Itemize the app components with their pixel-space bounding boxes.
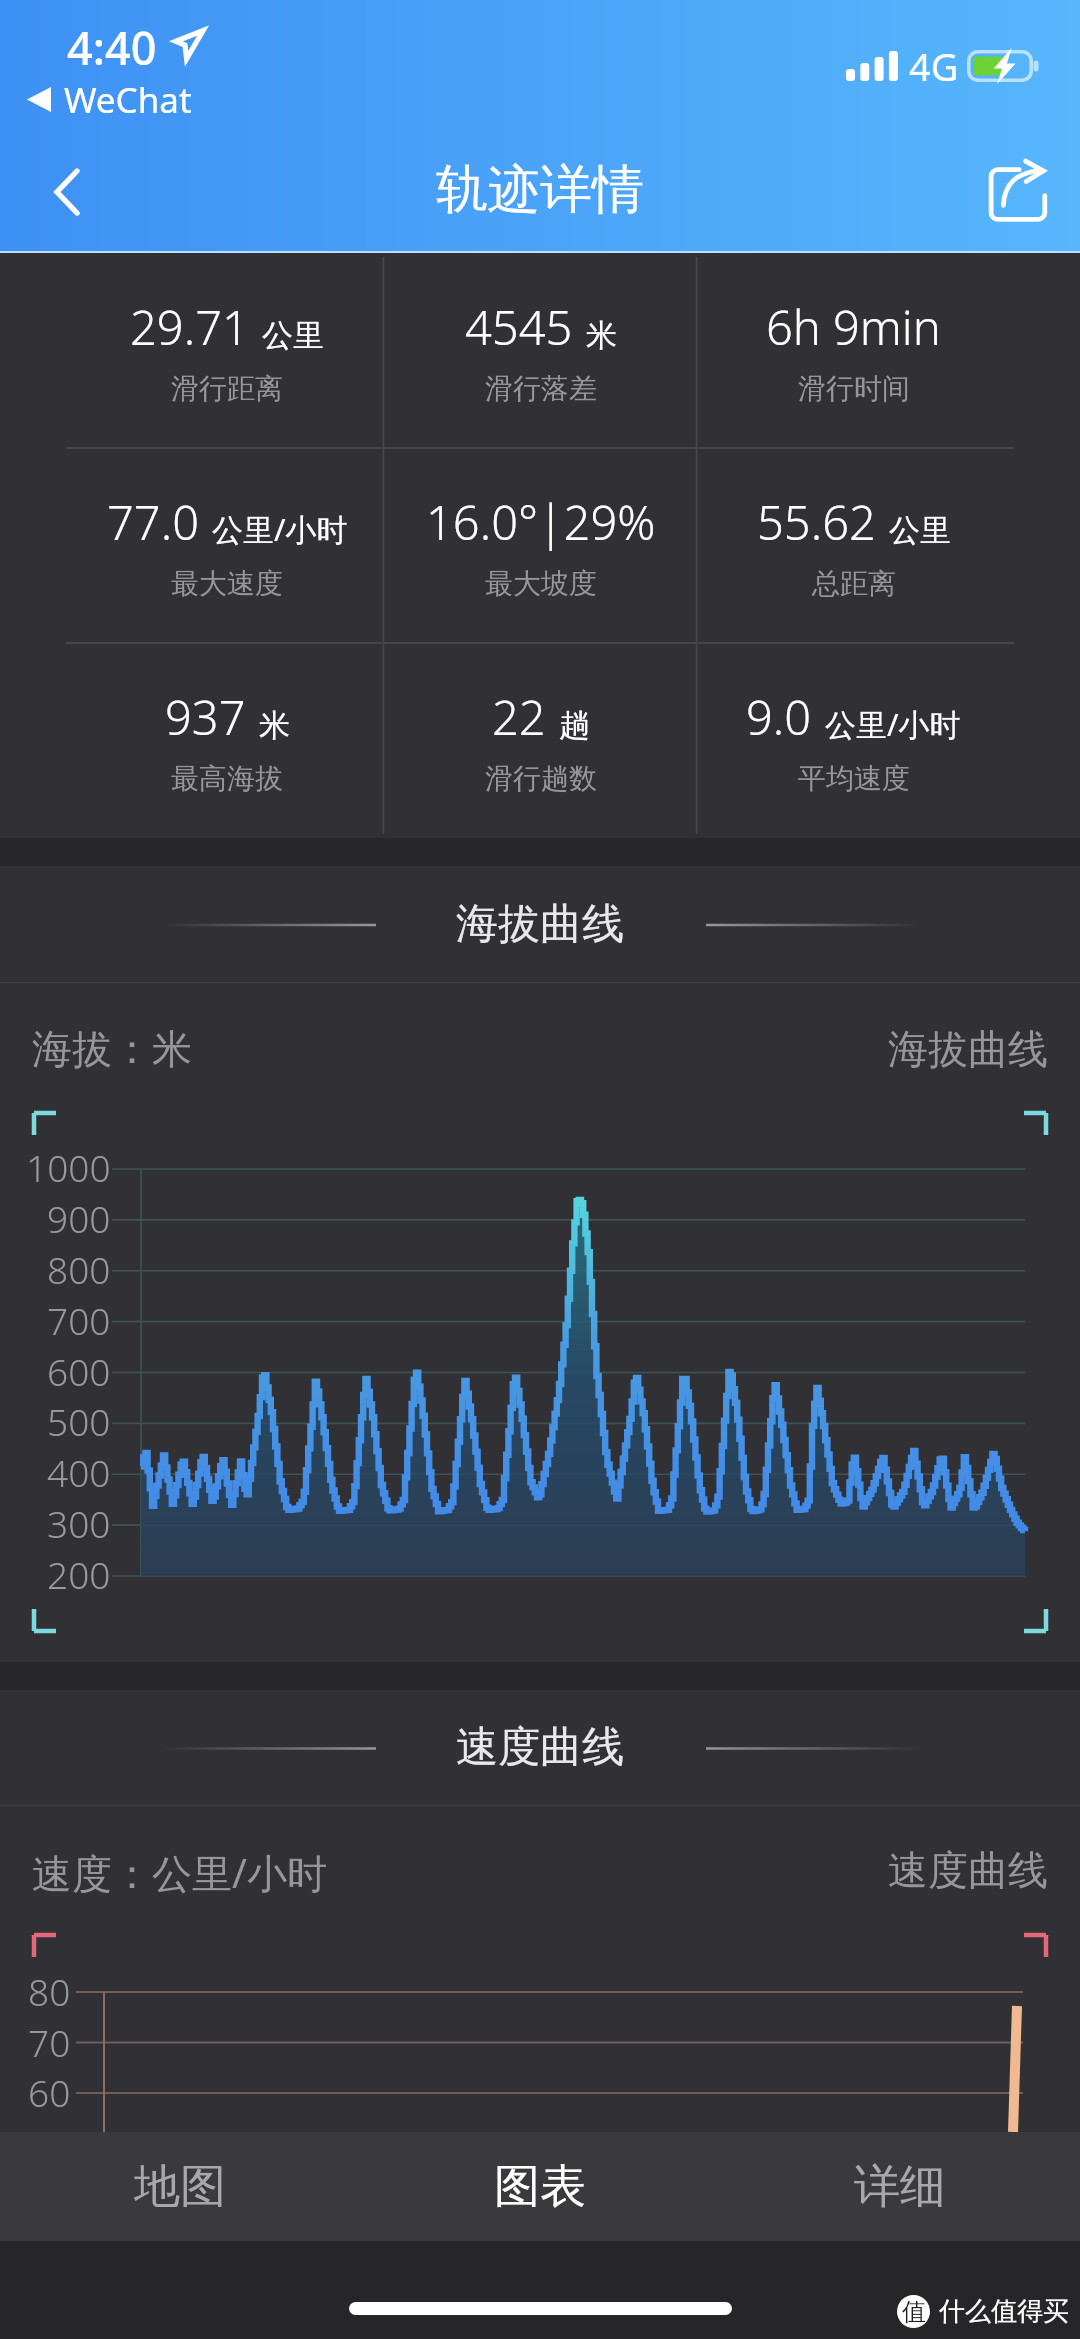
staticText: 海拔曲线 <box>888 1024 1048 1074</box>
staticText: 55.62 <box>757 490 876 554</box>
staticText: 70 <box>28 2017 71 2063</box>
staticText: 公里 <box>262 316 324 355</box>
staticText: 轨迹详情 <box>436 157 644 223</box>
staticText: 详细 <box>854 2158 946 2216</box>
staticText: 速度曲线 <box>456 1721 624 1774</box>
staticText: 滑行距离 <box>171 371 283 406</box>
staticText: 6h 9min <box>766 295 941 359</box>
staticText: 4G <box>909 40 959 92</box>
staticText: 4:40 <box>67 17 157 78</box>
staticText: 77.0 <box>107 490 199 554</box>
staticText: 米 <box>586 316 617 355</box>
staticText: 600 <box>47 1346 111 1392</box>
button[interactable]: 详细 <box>720 2132 1080 2241</box>
button[interactable]: 图表 <box>360 2132 720 2241</box>
staticText: 800 <box>47 1244 111 1290</box>
staticText: 地图 <box>134 2158 226 2216</box>
staticText: 滑行趟数 <box>485 761 597 796</box>
staticText: 700 <box>47 1295 111 1341</box>
staticText: 最大速度 <box>171 566 283 601</box>
staticText: 300 <box>47 1498 111 1544</box>
staticText: 16.0°|29% <box>426 490 656 554</box>
staticText: 29.71 <box>130 295 249 359</box>
staticText: 9.0 <box>746 685 812 749</box>
staticText: 滑行时间 <box>798 371 910 406</box>
staticText: 80 <box>28 1966 71 2012</box>
staticText: 200 <box>47 1549 111 1595</box>
staticText: 公里 <box>889 511 951 550</box>
staticText: 平均速度 <box>798 761 910 796</box>
staticText: 1000 <box>26 1142 111 1188</box>
staticText: 总距离 <box>812 566 896 601</box>
staticText: WeChat <box>64 76 192 124</box>
staticText: 937 <box>165 685 246 749</box>
staticText: 900 <box>47 1193 111 1239</box>
staticText: 60 <box>28 2067 71 2113</box>
staticText: 趟 <box>559 706 590 745</box>
staticText: 图表 <box>494 2158 586 2216</box>
button[interactable]: Share <box>950 131 1080 253</box>
staticText: 滑行落差 <box>485 371 597 406</box>
staticText: 海拔曲线 <box>456 898 624 951</box>
staticText: 速度：公里/小时 <box>32 1845 327 1900</box>
staticText: 值 <box>902 2297 926 2327</box>
staticText: 公里/小时 <box>825 703 961 745</box>
staticText: 400 <box>47 1447 111 1493</box>
button[interactable]: 地图 <box>0 2132 360 2241</box>
staticText: 最高海拔 <box>171 761 283 796</box>
staticText: 速度曲线 <box>888 1845 1048 1895</box>
button[interactable]: Back <box>0 131 130 253</box>
staticText: 最大坡度 <box>485 566 597 601</box>
staticText: 22 <box>492 685 546 749</box>
staticText: 米 <box>259 706 290 745</box>
staticText: 500 <box>47 1396 111 1442</box>
staticText: 公里/小时 <box>212 508 348 550</box>
staticText: 4545 <box>465 295 573 359</box>
staticText: 海拔：米 <box>32 1024 192 1074</box>
staticText: 什么值得买 <box>939 2295 1069 2328</box>
